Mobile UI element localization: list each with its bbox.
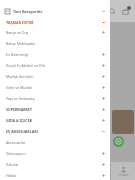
staticText: Küçük Ev Aletleri ve Ofis (6, 63, 101, 68)
button[interactable]: Halılar (0, 170, 110, 180)
button[interactable]: Dekorasyon (0, 148, 110, 159)
button[interactable]: Ev Elektroniği (0, 49, 110, 60)
button[interactable]: Account (111, 162, 135, 180)
button[interactable]: EV AKSESUARLARI (0, 126, 110, 137)
staticText: Hesabım (118, 173, 129, 177)
staticText: EV AKSESUARLARI (6, 129, 101, 134)
button[interactable]: Banyo ve Duş (0, 27, 110, 38)
button[interactable]: SUPERMARKET (0, 104, 110, 115)
button[interactable]: Search (107, 6, 118, 17)
staticText: Mutfak Gereçleri (6, 74, 101, 79)
button[interactable]: Sofra ve Mutfak (0, 82, 110, 93)
button[interactable]: GIDA & İÇECEK (0, 115, 110, 126)
button[interactable]: Yapı ve Hırdavatçı (0, 93, 110, 104)
staticText: Ev Elektroniği (6, 52, 101, 57)
button[interactable]: Close menu (110, 0, 135, 180)
button[interactable]: Küçük Ev Aletleri ve Ofis (0, 60, 110, 71)
staticText: SUPERMARKET (6, 107, 101, 112)
staticText: Halılar (6, 173, 101, 178)
button[interactable]: Cart (120, 6, 131, 17)
staticText: Sofra ve Mutfak (6, 85, 101, 90)
staticText: Yapı ve Hırdavatçı (6, 96, 101, 101)
button[interactable]: YAŞAMA EVİ'Mİ (0, 17, 110, 27)
staticText: Aksesuarlar (6, 140, 106, 145)
staticText: Banyo ve Duş (6, 30, 101, 35)
staticText: Tüm Kategoriler (13, 9, 101, 14)
button[interactable]: Mutfak Gereçleri (0, 71, 110, 82)
staticText: Bahçe Mobilyaları (6, 41, 106, 46)
staticText: GIDA & İÇECEK (6, 118, 101, 123)
staticText: Kokular (6, 162, 101, 167)
button[interactable]: Aksesuarlar (0, 137, 110, 148)
staticText: YAŞAMA EVİ'Mİ (6, 20, 101, 25)
staticText: Dekorasyon (6, 151, 101, 156)
button[interactable]: Bahçe Mobilyaları (0, 38, 110, 49)
button[interactable]: WhatsApp (113, 136, 124, 147)
button[interactable]: Tüm Kategoriler (0, 6, 110, 17)
button[interactable]: Kokular (0, 159, 110, 170)
